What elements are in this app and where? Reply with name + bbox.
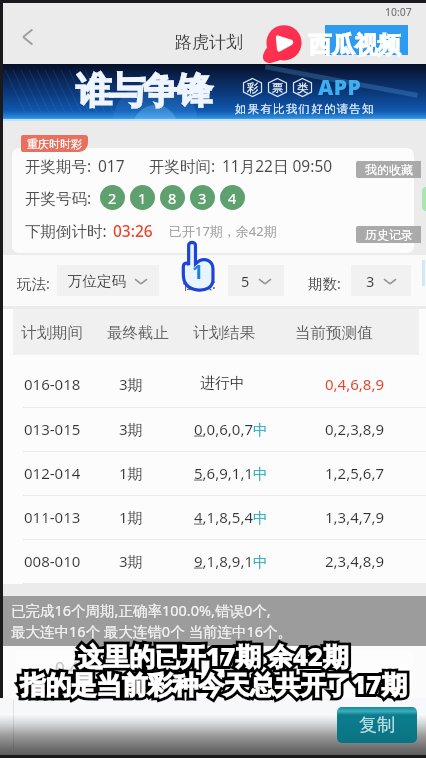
button[interactable]: 013-015	[3, 408, 426, 452]
staticText: 1,2,5,6,7	[325, 463, 384, 483]
staticText: 1期	[119, 463, 143, 483]
staticText: 5,6,9,1,1中	[194, 463, 268, 483]
staticText: 10:07	[385, 5, 412, 19]
staticText: 4,1,8,5,4中	[194, 507, 268, 527]
staticText: APP	[318, 73, 362, 102]
staticText: 计划结果	[193, 323, 255, 343]
staticText: 万位定码	[68, 272, 126, 290]
button[interactable]: 复制	[337, 707, 417, 743]
staticText: 0,0,6,0,7中	[194, 419, 268, 439]
staticText: 0,2,3,8,9	[325, 419, 384, 439]
staticText: 这里的已开17期 余42期	[78, 639, 349, 674]
button[interactable]: 016-018	[3, 355, 426, 408]
staticText: 彩	[247, 81, 259, 95]
staticText: 3期	[119, 419, 143, 439]
staticText: 这里的已开17期 余42期	[78, 639, 349, 674]
staticText: 0,4,6,8,9	[55, 656, 122, 679]
staticText: 计划期间	[21, 323, 83, 343]
staticText: 2	[108, 188, 117, 208]
button[interactable]: 我的收藏	[356, 161, 421, 178]
staticText: 11月22日 09:50	[222, 155, 333, 176]
staticText: 5	[241, 271, 250, 291]
button[interactable]: 万位定码	[57, 265, 159, 296]
staticText: 1,3,4,7,9	[325, 507, 384, 527]
staticText: 路虎计划	[175, 32, 243, 53]
staticText: 如果有比我们好的请告知	[235, 102, 375, 116]
button[interactable]: 5	[228, 265, 284, 296]
staticText: 已完成16个周期,正确率100.0%,错误0个,	[11, 600, 271, 620]
staticText: 03:26	[113, 220, 153, 241]
button[interactable]: 011-013	[3, 496, 426, 540]
staticText: 2,3,4,8,9	[325, 551, 384, 571]
staticText: 我的收藏	[365, 162, 413, 177]
staticText: 9,1,8,9,1中	[194, 551, 268, 571]
staticText: 012-014	[24, 463, 81, 483]
staticText: 最大连中16个 最大连错0个 当前连中16个。	[11, 621, 293, 641]
staticText: 最终截止	[107, 323, 169, 343]
staticText: 复制	[359, 714, 395, 737]
button[interactable]: 历史记录	[356, 226, 421, 243]
staticText: 3期	[119, 551, 143, 571]
button[interactable]: 008-010	[3, 540, 426, 584]
staticText: 011-013	[24, 507, 81, 527]
staticText: 指的是当前彩种今天总共开了17期	[20, 667, 407, 702]
staticText: 指的是当前彩种今天总共开了17期	[20, 667, 407, 702]
staticText: 1期	[119, 507, 143, 527]
button[interactable]: Back	[9, 18, 47, 56]
staticText: 进行中	[200, 374, 245, 393]
staticText: 开奖时间:	[149, 155, 216, 176]
staticText: 重庆时时彩	[27, 137, 82, 151]
staticText: 开奖期号:	[25, 155, 92, 176]
staticText: 1	[192, 258, 204, 285]
staticText: 票	[272, 81, 284, 95]
staticText: 历史记录	[365, 227, 413, 242]
staticText: 3	[366, 271, 375, 291]
staticText: 位数:	[183, 273, 216, 293]
staticText: 期数:	[308, 273, 341, 293]
staticText: 4	[228, 188, 237, 208]
staticText: 玩法:	[17, 273, 50, 293]
staticText: 016-018	[24, 374, 81, 394]
staticText: 017	[98, 155, 125, 176]
staticText: 已开17期，余42期	[169, 222, 277, 240]
staticText: 008-010	[24, 551, 81, 571]
staticText: 类	[297, 81, 309, 95]
staticText: 下期倒计时:	[25, 220, 107, 241]
staticText: 开奖号码:	[25, 187, 92, 208]
staticText: 3	[198, 188, 207, 208]
staticText: 8	[168, 188, 177, 208]
button[interactable]: 012-014	[3, 452, 426, 496]
staticText: 3期	[119, 374, 143, 394]
staticText: 1	[138, 188, 147, 208]
staticText: 013-015	[24, 419, 81, 439]
staticText: 当前预测值	[295, 323, 373, 343]
staticText: 西瓜视频	[309, 30, 401, 59]
staticText: 0,4,6,8,9	[325, 374, 384, 394]
button[interactable]: 3	[351, 265, 411, 296]
staticText: 谁与争锋	[77, 68, 211, 113]
